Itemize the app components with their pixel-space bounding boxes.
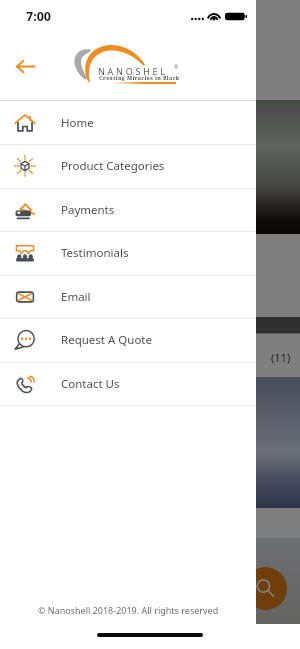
- button[interactable]: Back: [8, 49, 42, 83]
- button[interactable]: Email: [0, 275, 256, 318]
- button[interactable]: Search: [244, 567, 287, 610]
- button[interactable]: Testimonials: [0, 231, 256, 274]
- staticText: Request A Quote: [61, 332, 152, 348]
- button[interactable]: Request A Quote: [0, 318, 256, 361]
- staticText: © Nanoshell 2018-2019. All rights reserv…: [38, 604, 219, 616]
- staticText: Email: [61, 289, 91, 305]
- staticText: Contact Us: [61, 376, 120, 392]
- staticText: Payments: [61, 202, 115, 218]
- button[interactable]: Payments: [0, 188, 256, 231]
- staticText: NANOSHEL: [98, 65, 168, 77]
- staticText: Home: [61, 115, 94, 131]
- button[interactable]: Contact Us: [0, 362, 256, 405]
- staticText: (11): [271, 350, 291, 365]
- staticText: Creating Miracles in Black: [99, 74, 180, 81]
- staticText: 7:00: [26, 8, 51, 25]
- staticText: ®: [174, 64, 179, 71]
- button[interactable]: Product Categories: [0, 144, 256, 187]
- staticText: Testimonials: [61, 245, 129, 261]
- button[interactable]: Home: [0, 101, 256, 144]
- staticText: Product Categories: [61, 158, 165, 174]
